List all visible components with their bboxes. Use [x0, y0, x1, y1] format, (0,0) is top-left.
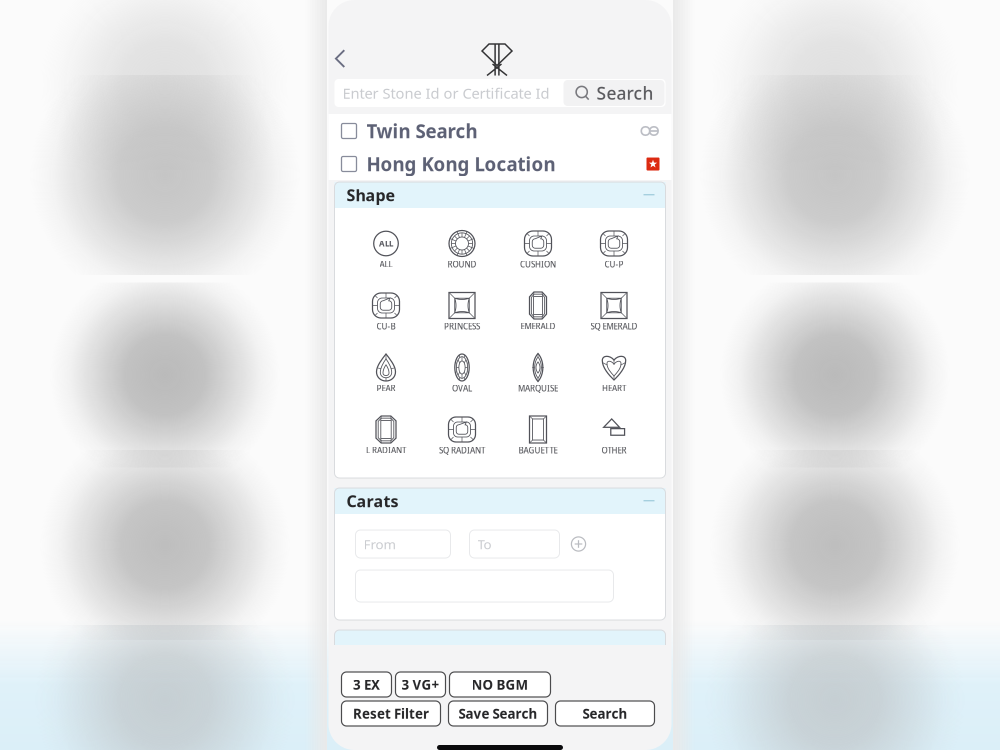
staticText: Reset Filter	[353, 705, 429, 722]
staticText: From	[363, 535, 395, 553]
button[interactable]: CU-P	[576, 228, 652, 290]
button[interactable]: PEAR	[348, 352, 424, 414]
button[interactable]: Search	[555, 701, 654, 726]
staticText: Carats	[346, 490, 398, 512]
staticText: ALL	[379, 259, 392, 270]
staticText: Save Search	[458, 705, 537, 722]
button[interactable]: From	[355, 530, 450, 558]
staticText: PRINCESS	[444, 321, 480, 332]
staticText: HEART	[602, 383, 626, 394]
staticText: Search	[582, 705, 627, 722]
staticText: ROUND	[447, 259, 476, 270]
button[interactable]: OTHER	[576, 414, 652, 476]
staticText: CU-P	[604, 259, 623, 270]
button[interactable]: Save Search	[448, 701, 547, 726]
staticText: CU-B	[376, 321, 395, 332]
staticText: Twin Search	[366, 119, 477, 143]
button[interactable]	[355, 570, 613, 602]
button[interactable]: Search	[563, 80, 665, 106]
staticText: BAGUETTE	[518, 445, 557, 456]
button[interactable]: SQ EMERALD	[576, 290, 652, 352]
button[interactable]: To	[469, 530, 559, 558]
button[interactable]: 3 VG+	[395, 672, 445, 697]
staticText: MARQUISE	[518, 383, 558, 394]
staticText: SQ EMERALD	[590, 321, 637, 332]
button[interactable]: HEART	[576, 352, 652, 414]
button[interactable]: Add carat range	[570, 536, 586, 552]
staticText: 3 EX	[353, 676, 380, 693]
button[interactable]: Twin Search	[328, 114, 671, 148]
button[interactable]: NO BGM	[449, 672, 550, 697]
button[interactable]: OVAL	[424, 352, 500, 414]
button[interactable]: 3 EX	[341, 672, 391, 697]
staticText: Hong Kong Location	[366, 152, 555, 176]
staticText: SQ RADIANT	[439, 445, 485, 456]
staticText: OTHER	[601, 445, 626, 456]
button[interactable]: SQ RADIANT	[424, 414, 500, 476]
staticText: To	[477, 535, 491, 553]
button[interactable]: BAGUETTE	[500, 414, 576, 476]
staticText: Shape	[346, 184, 395, 206]
staticText: PEAR	[376, 383, 395, 394]
button[interactable]: Reset Filter	[341, 701, 440, 726]
button[interactable]: L RADIANT	[348, 414, 424, 476]
button[interactable]: PRINCESS	[424, 290, 500, 352]
button[interactable]: CUSHION	[500, 228, 576, 290]
button[interactable]: CU-B	[348, 290, 424, 352]
staticText: EMERALD	[520, 321, 555, 332]
button[interactable]: Hong Kong Location	[328, 148, 671, 180]
button[interactable]: MARQUISE	[500, 352, 576, 414]
button[interactable]: ROUND	[424, 228, 500, 290]
staticText: CUSHION	[520, 259, 556, 270]
staticText: Search	[596, 81, 653, 104]
staticText: 3 VG+	[401, 676, 439, 693]
staticText: NO BGM	[471, 676, 528, 693]
staticText: L RADIANT	[366, 445, 406, 456]
button[interactable]: ALL	[348, 228, 424, 290]
staticText: Enter Stone Id or Certificate Id	[342, 83, 549, 103]
staticText: OVAL	[452, 383, 472, 394]
button[interactable]: EMERALD	[500, 290, 576, 352]
staticText: ALL	[379, 238, 393, 249]
button[interactable]: Back	[328, 9, 345, 70]
